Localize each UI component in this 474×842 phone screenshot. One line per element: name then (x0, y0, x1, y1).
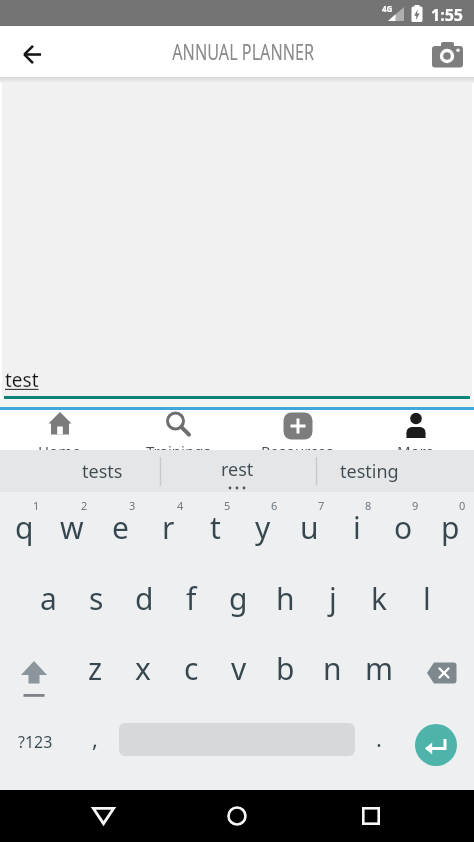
button[interactable]: t (192, 504, 239, 550)
staticText: r (162, 507, 175, 548)
staticText: 1:55 (431, 4, 463, 26)
button[interactable]: ?123 (0, 718, 71, 762)
staticText: i (353, 507, 361, 548)
staticText: Resources (261, 441, 334, 450)
button[interactable]: tests (44, 450, 161, 492)
button[interactable]: d (120, 575, 168, 621)
staticText: c (184, 648, 199, 689)
staticText: h (276, 578, 295, 619)
button[interactable]: x (119, 645, 167, 691)
button[interactable]: k (356, 575, 403, 621)
staticText: k (371, 578, 388, 619)
staticText: rest (221, 457, 254, 482)
staticText: b (276, 648, 295, 689)
staticText: Trainings (146, 441, 211, 450)
button[interactable] (0, 645, 71, 691)
button[interactable]: More (357, 410, 474, 450)
staticText: , (92, 723, 98, 753)
button[interactable]: Resources (238, 410, 357, 450)
staticText: p (441, 507, 460, 548)
staticText: y (255, 507, 271, 548)
staticText: s (89, 578, 104, 619)
button[interactable]: v (215, 645, 262, 691)
button[interactable] (422, 26, 474, 78)
staticText: 3 (129, 498, 136, 512)
staticText: 0 (459, 498, 466, 512)
button[interactable]: Trainings (119, 410, 238, 450)
button[interactable] (211, 790, 263, 842)
staticText: test (5, 367, 39, 393)
staticText: u (300, 507, 319, 548)
button[interactable]: y (239, 504, 286, 550)
staticText: ANNUAL PLANNER (172, 38, 315, 67)
staticText: m (365, 648, 394, 689)
staticText: a (40, 578, 57, 619)
button[interactable] (0, 26, 52, 78)
staticText: 6 (271, 498, 278, 512)
staticText: f (186, 578, 197, 619)
button[interactable]: . (355, 718, 403, 762)
button[interactable] (345, 790, 397, 842)
staticText: q (15, 507, 34, 548)
staticText: Home (38, 441, 81, 450)
button[interactable] (77, 790, 129, 842)
staticText: tests (82, 459, 123, 484)
button[interactable]: z (71, 645, 119, 691)
staticText: e (112, 507, 129, 548)
button[interactable]: h (262, 575, 309, 621)
button[interactable]: Home (0, 410, 119, 450)
button[interactable]: b (262, 645, 309, 691)
staticText: l (423, 578, 431, 619)
staticText: j (329, 578, 337, 619)
staticText: 7 (318, 498, 325, 512)
button[interactable]: w (48, 504, 96, 550)
staticText: w (60, 507, 84, 548)
staticText: 2 (81, 498, 88, 512)
button[interactable]: m (356, 645, 403, 691)
button[interactable] (403, 645, 474, 691)
button[interactable]: q (0, 504, 48, 550)
staticText: More (397, 441, 435, 450)
button[interactable] (119, 718, 355, 762)
button[interactable]: p (427, 504, 474, 550)
staticText: t (210, 507, 221, 548)
button[interactable]: , (71, 718, 119, 762)
staticText: 4 (177, 498, 184, 512)
button[interactable]: u (286, 504, 333, 550)
button[interactable]: n (309, 645, 356, 691)
button[interactable]: s (72, 575, 120, 621)
staticText: n (323, 648, 342, 689)
staticText: x (135, 648, 151, 689)
button[interactable]: l (403, 575, 450, 621)
button[interactable]: f (168, 575, 215, 621)
button[interactable] (415, 724, 457, 766)
button[interactable]: c (167, 645, 215, 691)
button[interactable]: rest (178, 450, 296, 492)
staticText: 9 (412, 498, 419, 512)
staticText: testing (340, 459, 399, 484)
staticText: ?123 (18, 731, 53, 753)
staticText: 4G (382, 3, 393, 14)
staticText: o (394, 507, 413, 548)
staticText: d (135, 578, 154, 619)
staticText: 8 (365, 498, 372, 512)
staticText: v (231, 648, 247, 689)
button[interactable]: testing (310, 450, 428, 492)
staticText: z (88, 648, 103, 689)
button[interactable]: o (380, 504, 427, 550)
button[interactable]: a (24, 575, 72, 621)
staticText: . (376, 723, 382, 753)
staticText: g (229, 578, 248, 619)
button[interactable]: r (144, 504, 192, 550)
button[interactable]: e (96, 504, 144, 550)
staticText: 5 (224, 498, 231, 512)
button[interactable]: i (333, 504, 380, 550)
button[interactable]: j (309, 575, 356, 621)
button[interactable]: g (215, 575, 262, 621)
staticText: 1 (33, 498, 40, 512)
